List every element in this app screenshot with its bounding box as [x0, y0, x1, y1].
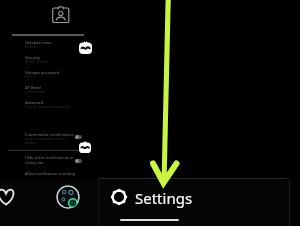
staticText: Hotspot password: [25, 70, 59, 75]
button[interactable]: Settings: [135, 188, 193, 208]
staticText: Hide silent notifications in status bar: [25, 155, 74, 165]
staticText: Show conversation content bubbles: [25, 137, 66, 145]
staticText: ••••••••: [25, 75, 35, 79]
button[interactable]: Hotspot name: [25, 40, 52, 55]
button[interactable]: Toggle: [75, 159, 82, 163]
staticText: AP Band: [25, 85, 41, 90]
button[interactable]: Advanced: [25, 100, 71, 115]
button[interactable]: Settings: [109, 187, 129, 207]
staticText: Point xx: [25, 45, 38, 49]
staticText: Security: [25, 55, 40, 60]
staticText: Conversation notifications: [25, 132, 74, 137]
button[interactable]: Security: [25, 55, 48, 70]
staticText: WPA2-Personal: [25, 60, 48, 64]
staticText: Hotspot name: [25, 40, 52, 45]
button[interactable]: Hotspot password: [25, 70, 59, 85]
button[interactable]: Allow notification snoozing: [25, 171, 76, 176]
button[interactable]: Favorites: [0, 187, 16, 207]
staticText: Advanced: [25, 100, 44, 105]
button[interactable]: Toggle: [75, 135, 82, 139]
button[interactable]: App icon: [56, 185, 80, 209]
button[interactable]: Hide silent notifications in status bar: [25, 155, 74, 165]
staticText: 2.4 GHz Band: [25, 90, 46, 94]
staticText: Turn off hotspot automatically: [25, 105, 71, 109]
button[interactable]: Conversation notifications: [25, 132, 74, 145]
button[interactable]: AP Band: [25, 85, 46, 100]
